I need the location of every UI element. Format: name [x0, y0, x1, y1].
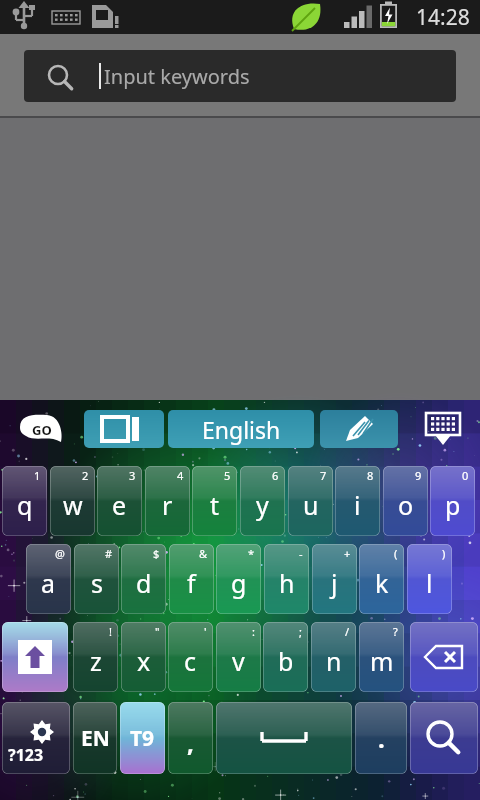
- staticText: +: [344, 546, 351, 561]
- staticText: v: [232, 644, 245, 678]
- staticText: z: [90, 644, 102, 678]
- button[interactable]: :: [216, 622, 261, 692]
- button[interactable]: 8: [335, 466, 380, 536]
- staticText: .: [378, 722, 385, 755]
- button[interactable]: EN: [73, 702, 117, 774]
- button[interactable]: English: [168, 410, 314, 448]
- button[interactable]: Backspace: [410, 622, 478, 692]
- button[interactable]: ;: [263, 622, 308, 692]
- staticText: 4: [177, 468, 184, 483]
- button[interactable]: Shift: [2, 622, 68, 692]
- button[interactable]: 9: [383, 466, 428, 536]
- button[interactable]: ': [168, 622, 213, 692]
- button[interactable]: Search: [410, 702, 478, 774]
- staticText: 2: [82, 468, 89, 483]
- button[interactable]: #: [74, 544, 119, 614]
- staticText: ): [442, 546, 446, 561]
- staticText: /: [345, 624, 350, 639]
- staticText: Input keywords: [104, 63, 250, 90]
- staticText: ": [155, 624, 160, 639]
- staticText: 7: [320, 468, 327, 483]
- staticText: ?123: [8, 744, 44, 766]
- button[interactable]: ): [407, 544, 452, 614]
- button[interactable]: /: [311, 622, 356, 692]
- staticText: 14:28: [416, 3, 470, 32]
- button[interactable]: ,: [168, 702, 213, 774]
- staticText: 8: [367, 468, 374, 483]
- staticText: m: [370, 644, 394, 678]
- staticText: e: [112, 488, 127, 522]
- staticText: k: [375, 566, 389, 600]
- staticText: q: [17, 488, 33, 522]
- button[interactable]: +: [312, 544, 357, 614]
- button[interactable]: GO Keyboard: [8, 406, 70, 452]
- button[interactable]: 6: [240, 466, 285, 536]
- staticText: f: [187, 566, 196, 600]
- staticText: :: [252, 624, 255, 639]
- staticText: s: [91, 566, 103, 600]
- staticText: g: [231, 566, 247, 600]
- staticText: j: [331, 566, 338, 600]
- staticText: 9: [415, 468, 422, 483]
- button[interactable]: ": [121, 622, 166, 692]
- staticText: d: [136, 566, 152, 600]
- button[interactable]: 1: [2, 466, 47, 536]
- button[interactable]: Hide keyboard: [418, 407, 468, 451]
- button[interactable]: T9: [120, 702, 165, 774]
- button[interactable]: .: [355, 702, 407, 774]
- other: Space: [216, 702, 352, 774]
- staticText: !: [109, 624, 112, 639]
- staticText: y: [256, 488, 269, 522]
- staticText: ,: [187, 726, 194, 759]
- staticText: x: [137, 644, 151, 678]
- button[interactable]: 5: [192, 466, 237, 536]
- staticText: l: [426, 566, 433, 600]
- staticText: b: [278, 644, 294, 678]
- staticText: GO: [32, 421, 52, 439]
- staticText: 5: [224, 468, 231, 483]
- staticText: 6: [272, 468, 279, 483]
- button[interactable]: $: [121, 544, 166, 614]
- button[interactable]: Space: [216, 702, 352, 774]
- staticText: (: [394, 546, 398, 561]
- staticText: -: [299, 546, 303, 561]
- button[interactable]: @: [26, 544, 71, 614]
- button[interactable]: ?: [359, 622, 404, 692]
- staticText: c: [184, 644, 197, 678]
- staticText: h: [279, 566, 295, 600]
- other: Backspace: [410, 622, 478, 692]
- button[interactable]: Theme: [84, 410, 164, 448]
- staticText: i: [354, 488, 361, 522]
- button[interactable]: Input keywords: [24, 50, 456, 102]
- staticText: @: [55, 546, 65, 561]
- staticText: T9: [130, 724, 155, 753]
- staticText: $: [153, 546, 160, 561]
- button[interactable]: 3: [97, 466, 142, 536]
- staticText: English: [202, 414, 281, 445]
- other: Shift: [18, 640, 52, 674]
- button[interactable]: 0: [430, 466, 475, 536]
- button[interactable]: ?123: [2, 702, 70, 774]
- staticText: ;: [299, 624, 302, 639]
- staticText: *: [248, 546, 255, 561]
- button[interactable]: 4: [145, 466, 190, 536]
- button[interactable]: -: [264, 544, 309, 614]
- staticText: n: [326, 644, 342, 678]
- staticText: t: [210, 488, 220, 522]
- button[interactable]: Handwriting: [320, 410, 398, 448]
- button[interactable]: *: [216, 544, 261, 614]
- button[interactable]: 2: [50, 466, 95, 536]
- staticText: ?: [393, 624, 398, 639]
- button[interactable]: (: [359, 544, 404, 614]
- staticText: 0: [462, 468, 469, 483]
- staticText: #: [105, 546, 113, 561]
- button[interactable]: !: [73, 622, 118, 692]
- button[interactable]: 7: [288, 466, 333, 536]
- other: Search: [410, 702, 478, 774]
- staticText: 3: [129, 468, 136, 483]
- staticText: &: [199, 546, 208, 561]
- button[interactable]: &: [169, 544, 214, 614]
- staticText: w: [63, 488, 83, 522]
- staticText: 1: [34, 468, 41, 483]
- staticText: EN: [81, 724, 110, 753]
